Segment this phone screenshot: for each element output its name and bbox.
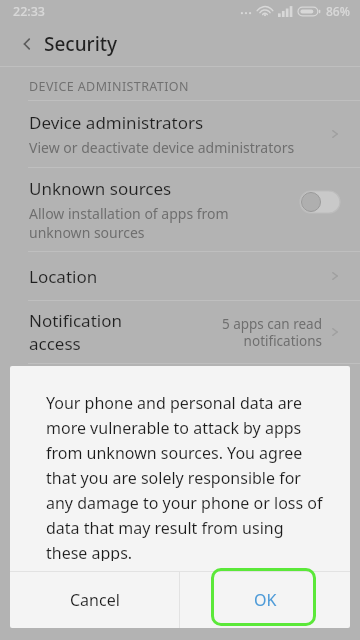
staticText: Security [44, 31, 118, 57]
button[interactable]: Location [0, 252, 360, 300]
staticText: 5 apps can read notifications [221, 315, 322, 350]
staticText: access [29, 332, 81, 355]
staticText: View or deactivate device administrators [29, 138, 295, 157]
staticText: 86% [326, 3, 350, 19]
staticText: Unknown sources [29, 177, 172, 200]
staticText: 22:33 [13, 3, 46, 20]
button[interactable]: Back [10, 27, 44, 61]
button[interactable]: Unknown sources toggle [300, 191, 340, 213]
button[interactable]: Unknown sources [0, 168, 360, 251]
staticText: Location [29, 265, 98, 288]
button[interactable]: View and modify stored credentials [0, 365, 360, 425]
button[interactable]: Cancel [10, 572, 179, 628]
staticText: Device administrators [29, 111, 204, 134]
staticText: Cancel [70, 589, 120, 611]
staticText: Notification [29, 309, 122, 332]
button[interactable]: Device administrators [0, 101, 360, 167]
staticText: View and modify stored credentials [29, 400, 260, 419]
staticText: Allow installation of apps from unknown … [29, 204, 280, 242]
staticText: Your phone and personal data are more vu… [46, 392, 324, 561]
staticText: DEVICE ADMINISTRATION [29, 78, 189, 95]
staticText: OK [254, 589, 277, 611]
button[interactable]: OK [180, 572, 350, 628]
button[interactable]: Notification [0, 301, 360, 363]
